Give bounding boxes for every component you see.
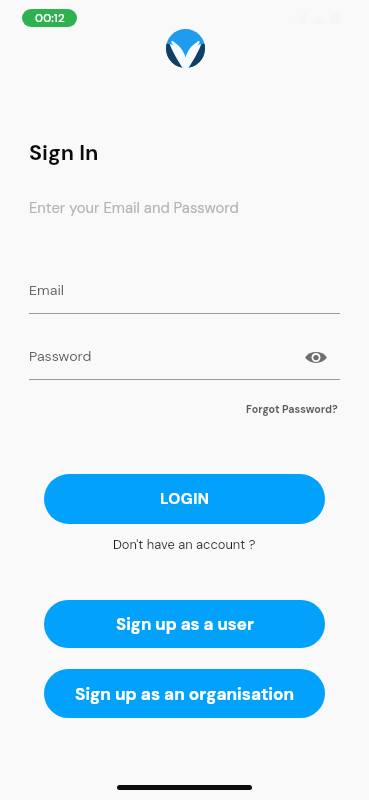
staticText: Forgot Password?	[246, 402, 338, 416]
button[interactable]: Show password	[303, 345, 329, 369]
button[interactable]: Sign up as a user	[44, 600, 325, 648]
staticText: Sign up as a user	[116, 613, 254, 635]
staticText: Sign up as an organisation	[75, 683, 295, 705]
button[interactable]: Sign up as an organisation	[44, 669, 325, 718]
staticText: Don't have an account ?	[113, 536, 256, 553]
staticText: Password	[29, 347, 92, 365]
button[interactable]: LOGIN	[44, 474, 325, 524]
button[interactable]: Don't have an account ?	[111, 534, 258, 555]
staticText: Enter your Email and Password	[29, 198, 239, 217]
staticText: LOGIN	[160, 489, 210, 509]
staticText: 00:12	[35, 11, 65, 26]
button[interactable]: Forgot Password?	[244, 400, 340, 418]
staticText: Email	[29, 281, 64, 299]
staticText: Sign In	[29, 139, 99, 167]
